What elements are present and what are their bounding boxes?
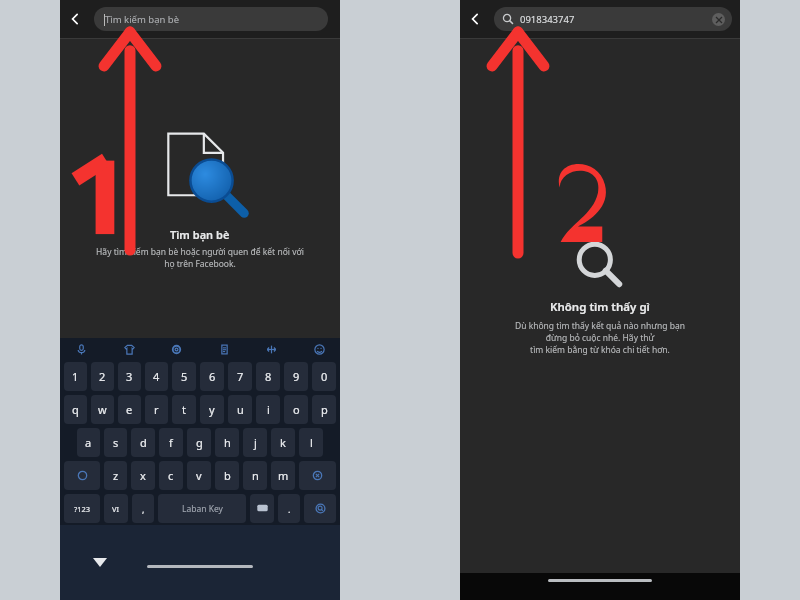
button[interactable]: Translate	[260, 338, 282, 360]
button[interactable]: Settings	[165, 338, 187, 360]
staticText: Tìm bạn bè	[170, 227, 230, 242]
button[interactable]: c	[159, 461, 183, 490]
staticText: y	[209, 402, 215, 417]
button[interactable]: 3	[118, 362, 141, 391]
staticText: m	[278, 468, 289, 483]
button[interactable]: Mic	[70, 338, 92, 360]
button[interactable]: 1	[64, 362, 87, 391]
button[interactable]: Keyboard layout	[250, 494, 274, 523]
staticText: 8	[265, 369, 272, 384]
staticText: q	[72, 402, 79, 417]
staticText: s	[113, 435, 119, 450]
button[interactable]: VI	[104, 494, 128, 523]
button[interactable]: .	[278, 494, 300, 523]
button[interactable]: Clipboard	[213, 338, 235, 360]
staticText: x	[140, 468, 146, 483]
staticText: 0	[321, 369, 328, 384]
staticText: 6	[209, 369, 216, 384]
button[interactable]: a	[77, 428, 100, 457]
button[interactable]: o	[284, 395, 308, 424]
button[interactable]: Backspace	[299, 461, 336, 490]
button[interactable]: 0	[312, 362, 336, 391]
button[interactable]: d	[131, 428, 155, 457]
staticText: VI	[112, 504, 120, 514]
staticText: 7	[237, 369, 244, 384]
button[interactable]: j	[243, 428, 267, 457]
button[interactable]: Laban Key	[158, 494, 246, 523]
button[interactable]: i	[256, 395, 280, 424]
button[interactable]: Tìm kiếm bạn bè	[94, 7, 328, 31]
staticText: t	[182, 402, 186, 417]
button[interactable]: x	[131, 461, 155, 490]
staticText: b	[224, 468, 231, 483]
staticText: k	[280, 435, 286, 450]
button[interactable]: m	[271, 461, 295, 490]
button[interactable]: u	[228, 395, 252, 424]
button[interactable]: Emoji	[308, 338, 330, 360]
staticText: d	[140, 435, 147, 450]
other: Hide keyboard	[93, 558, 107, 567]
button[interactable]: y	[200, 395, 224, 424]
button[interactable]: n	[243, 461, 267, 490]
button[interactable]: 9	[284, 362, 308, 391]
staticText: Laban Key	[182, 503, 223, 515]
button[interactable]: 8	[256, 362, 280, 391]
button[interactable]: b	[215, 461, 239, 490]
button[interactable]: h	[215, 428, 239, 457]
button[interactable]: f	[159, 428, 183, 457]
staticText: Hãy tìm kiếm bạn bè hoặc người quen để k…	[96, 246, 304, 270]
button[interactable]: 4	[145, 362, 168, 391]
staticText: Không tìm thấy gì	[550, 299, 650, 315]
button[interactable]: Shift	[64, 461, 100, 490]
staticText: c	[168, 468, 174, 483]
button[interactable]: Search	[304, 494, 336, 523]
button[interactable]: ,	[132, 494, 154, 523]
staticText: r	[154, 402, 159, 417]
button[interactable]: ?123	[64, 494, 100, 523]
staticText: w	[98, 402, 107, 417]
button[interactable]: Back	[60, 0, 90, 38]
staticText: e	[126, 402, 133, 417]
staticText: 1	[72, 369, 79, 384]
staticText: g	[196, 435, 203, 450]
staticText: h	[224, 435, 231, 450]
staticText: 3	[126, 369, 133, 384]
staticText: i	[267, 402, 270, 417]
button[interactable]: k	[271, 428, 295, 457]
staticText: .	[288, 503, 291, 515]
staticText: Dù không tìm thấy kết quả nào nhưng bạn …	[515, 320, 685, 356]
staticText: z	[113, 468, 119, 483]
button[interactable]: Back	[460, 0, 490, 38]
button[interactable]: e	[118, 395, 141, 424]
button[interactable]: s	[104, 428, 127, 457]
button[interactable]: t	[172, 395, 196, 424]
button[interactable]: l	[299, 428, 323, 457]
staticText: v	[196, 468, 202, 483]
button[interactable]: r	[145, 395, 168, 424]
button[interactable]: z	[104, 461, 127, 490]
staticText: ,	[142, 503, 145, 515]
staticText: n	[252, 468, 259, 483]
staticText: Tìm kiếm bạn bè	[105, 13, 180, 26]
button[interactable]: 0918343747	[494, 7, 732, 31]
staticText: 9	[293, 369, 300, 384]
staticText: u	[237, 402, 244, 417]
staticText: o	[293, 402, 300, 417]
button[interactable]: 5	[172, 362, 196, 391]
button[interactable]: g	[187, 428, 211, 457]
button[interactable]: 7	[228, 362, 252, 391]
staticText: f	[169, 435, 173, 450]
staticText: 0918343747	[520, 13, 575, 26]
button[interactable]: 2	[91, 362, 114, 391]
button[interactable]: Clear	[712, 13, 725, 26]
staticText: p	[321, 402, 328, 417]
staticText: 2	[99, 369, 106, 384]
button[interactable]: w	[91, 395, 114, 424]
button[interactable]: q	[64, 395, 87, 424]
button[interactable]: Sticker	[118, 338, 140, 360]
staticText: ?123	[74, 504, 91, 514]
button[interactable]: p	[312, 395, 336, 424]
button[interactable]: 6	[200, 362, 224, 391]
button[interactable]: v	[187, 461, 211, 490]
staticText: a	[85, 435, 92, 450]
